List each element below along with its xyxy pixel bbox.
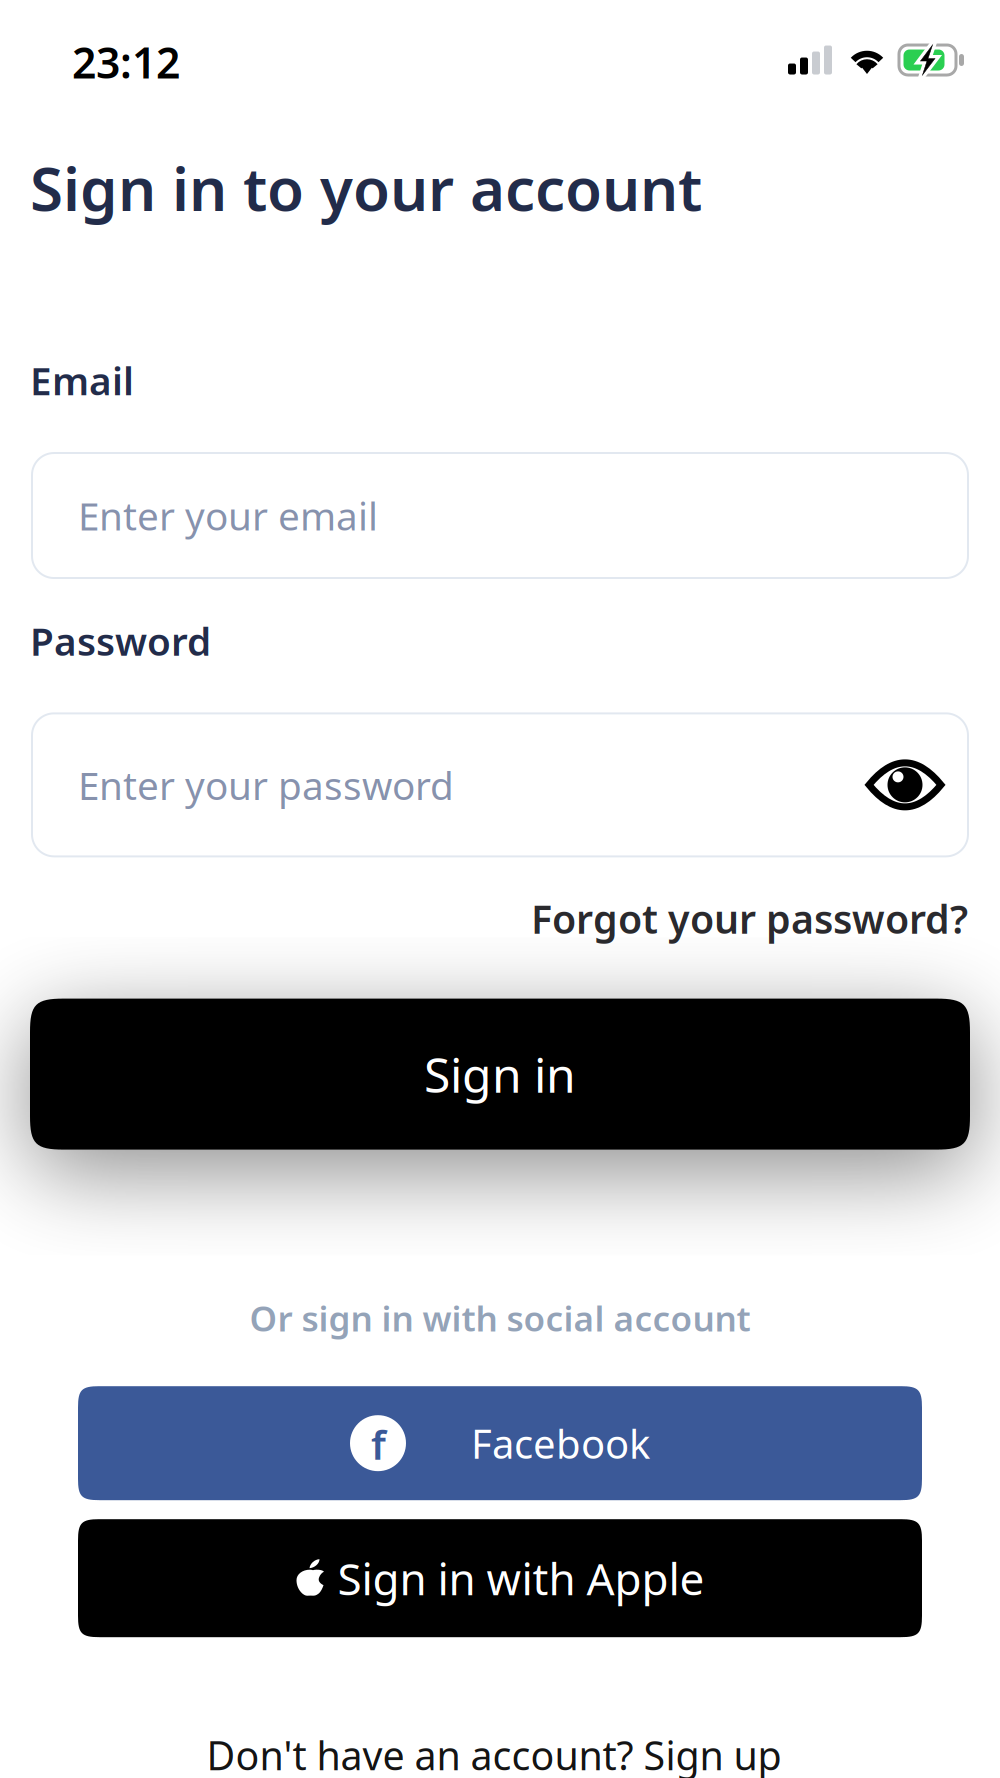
staticText: Don't have an account? Sign up (206, 1729, 781, 1778)
staticText: Or sign in with social account (249, 1295, 750, 1341)
staticText: Facebook (471, 1417, 650, 1470)
staticText: Sign in with Apple (337, 1549, 704, 1607)
button[interactable]: Forgot your password? (531, 892, 968, 945)
staticText: Sign in (424, 1042, 576, 1106)
button[interactable]: Sign in (30, 999, 970, 1150)
staticText: Enter your password (78, 759, 454, 810)
staticText: Sign in to your account (30, 148, 702, 228)
staticText: Forgot your password? (531, 892, 968, 945)
button[interactable]: Sign in with Apple (78, 1519, 922, 1637)
staticText: f (371, 1418, 386, 1471)
staticText: 23:12 (72, 34, 180, 90)
staticText: Enter your email (78, 490, 378, 541)
staticText: Email (30, 355, 134, 406)
staticText: Password (30, 615, 211, 666)
button[interactable]: Show password (865, 759, 945, 811)
button[interactable]: f (78, 1386, 922, 1500)
button[interactable]: Don't have an account? Sign up (212, 1729, 787, 1778)
